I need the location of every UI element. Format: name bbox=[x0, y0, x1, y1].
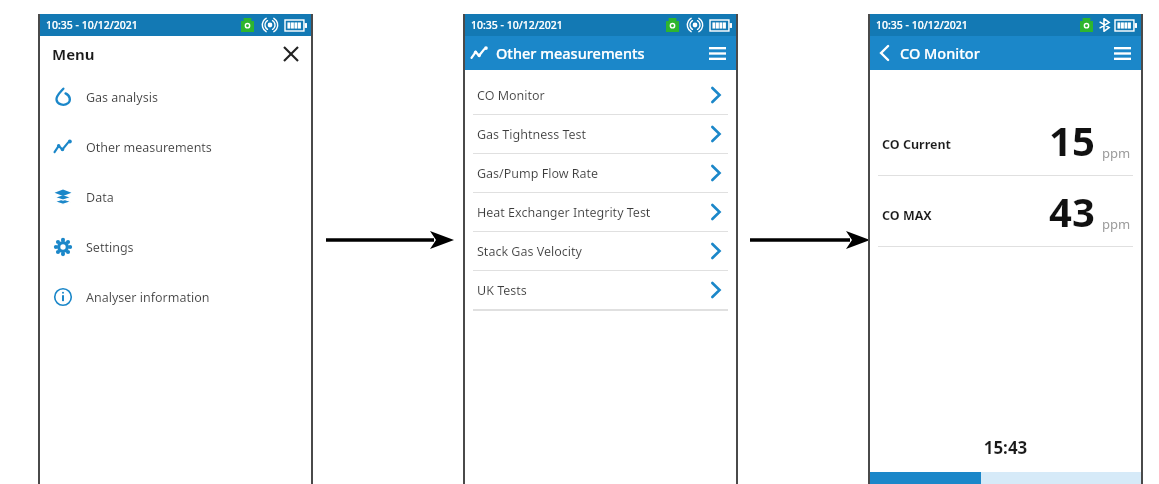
button[interactable]: Gas/Pump Flow Rate bbox=[463, 154, 738, 193]
button[interactable]: Heat Exchanger Integrity Test bbox=[463, 193, 738, 232]
staticText: Data bbox=[86, 189, 114, 206]
button[interactable]: Analyser information bbox=[38, 272, 313, 322]
staticText: 15:43 bbox=[868, 436, 1143, 459]
staticText: CO Current bbox=[882, 136, 952, 153]
staticText: Analyser information bbox=[86, 289, 210, 306]
staticText: ppm bbox=[1102, 144, 1131, 162]
button[interactable]: Data bbox=[38, 172, 313, 222]
staticText: 10:35 - 10/12/2021 bbox=[46, 18, 138, 32]
staticText: UK Tests bbox=[477, 282, 527, 299]
staticText: Settings bbox=[86, 239, 134, 256]
button[interactable]: Other measurements bbox=[38, 122, 313, 172]
staticText: Gas/Pump Flow Rate bbox=[477, 165, 599, 182]
staticText: ppm bbox=[1102, 215, 1131, 233]
staticText: Gas analysis bbox=[86, 89, 158, 106]
button[interactable]: Gas Tightness Test bbox=[463, 115, 738, 154]
staticText: CO MAX bbox=[882, 207, 932, 224]
button[interactable]: UK Tests bbox=[463, 271, 738, 310]
staticText: Menu bbox=[52, 44, 95, 64]
button[interactable]: Settings bbox=[38, 222, 313, 272]
button[interactable]: Menu bbox=[702, 38, 732, 68]
staticText: 10:35 - 10/12/2021 bbox=[471, 18, 563, 32]
button[interactable]: Menu bbox=[1107, 38, 1137, 68]
staticText: 10:35 - 10/12/2021 bbox=[876, 18, 968, 32]
staticText: CO Monitor bbox=[477, 87, 545, 104]
staticText: Stack Gas Velocity bbox=[477, 243, 582, 260]
staticText: Other measurements bbox=[86, 139, 212, 156]
button[interactable]: CO Monitor bbox=[463, 76, 738, 115]
staticText: Other measurements bbox=[496, 43, 645, 63]
staticText: CO Monitor bbox=[900, 43, 980, 63]
staticText: 15 bbox=[1049, 113, 1095, 167]
staticText: Gas Tightness Test bbox=[477, 126, 587, 143]
staticText: Heat Exchanger Integrity Test bbox=[477, 204, 651, 221]
button[interactable]: Stack Gas Velocity bbox=[463, 232, 738, 271]
button[interactable]: Gas analysis bbox=[38, 72, 313, 122]
button[interactable]: Close bbox=[277, 40, 305, 68]
staticText: 43 bbox=[1049, 184, 1095, 238]
button[interactable]: Back bbox=[876, 45, 892, 61]
